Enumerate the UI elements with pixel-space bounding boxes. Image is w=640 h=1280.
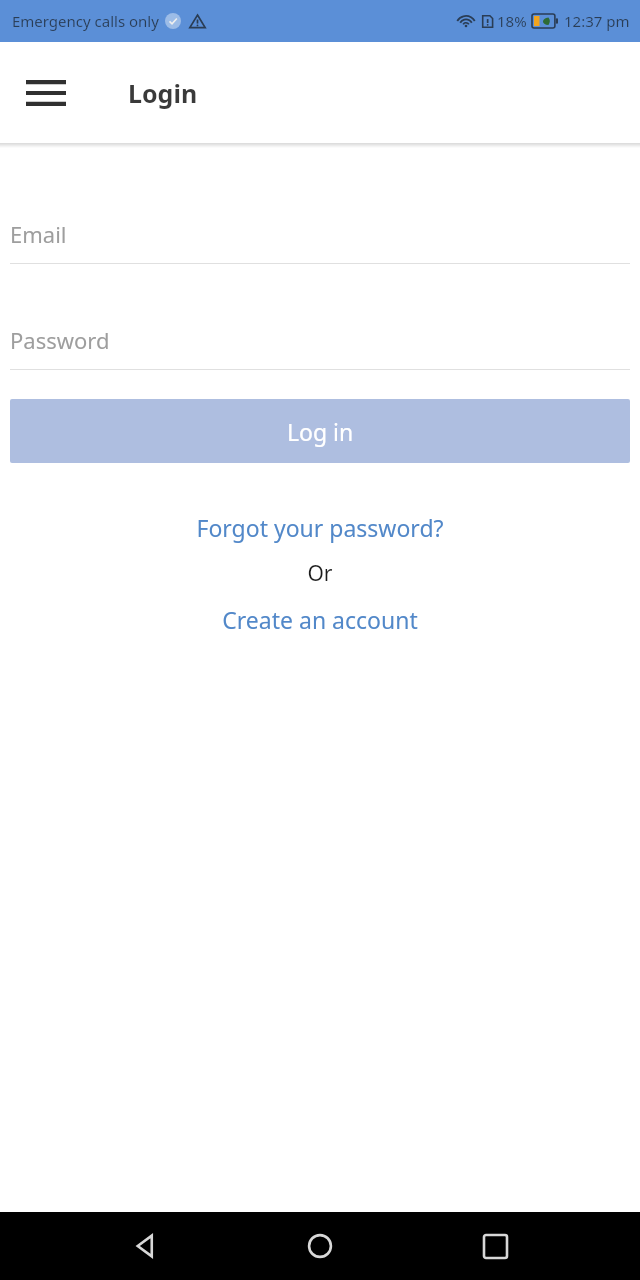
button[interactable]: Recent apps xyxy=(465,1216,525,1276)
staticText: Email xyxy=(10,219,67,249)
staticText: 12:37 pm xyxy=(564,11,630,31)
staticText: 18% xyxy=(497,11,527,31)
button[interactable]: Create an account xyxy=(10,604,630,635)
button[interactable]: Forgot your password? xyxy=(10,512,630,543)
button[interactable]: Email xyxy=(10,214,630,264)
staticText: Create an account xyxy=(222,604,418,635)
button[interactable]: Open navigation menu xyxy=(22,69,70,117)
button[interactable]: Home xyxy=(290,1216,350,1276)
button[interactable]: Password xyxy=(10,320,630,370)
button[interactable]: Log in xyxy=(10,399,630,463)
staticText: Password xyxy=(10,325,110,355)
staticText: Forgot your password? xyxy=(196,512,444,543)
staticText: Or xyxy=(307,559,333,588)
button[interactable]: Back xyxy=(115,1216,175,1276)
staticText: Log in xyxy=(287,416,354,447)
staticText: Login xyxy=(128,76,198,110)
staticText: Emergency calls only xyxy=(12,11,159,31)
